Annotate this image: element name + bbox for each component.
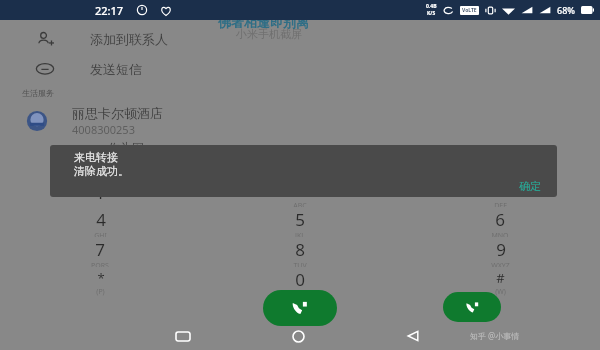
staticText: 添加到联系人 <box>90 31 168 47</box>
button[interactable]: Recents <box>168 328 198 344</box>
button[interactable]: 添加到联系人 <box>0 24 600 54</box>
staticText: DEF <box>494 201 507 207</box>
button[interactable]: 3 <box>400 178 600 207</box>
staticText: 清除成功。 <box>74 164 129 178</box>
button[interactable]: 确定 <box>513 177 547 195</box>
staticText: PQRS <box>91 261 109 267</box>
staticText: GHI <box>94 231 107 237</box>
staticText: 2 <box>295 178 305 201</box>
button[interactable]: 0 <box>200 268 400 297</box>
button[interactable]: Call with SIM 2 <box>443 292 501 322</box>
staticText: 丽思卡尔顿酒店 <box>72 105 163 121</box>
button[interactable]: 6 <box>400 208 600 237</box>
button[interactable]: 8 <box>200 238 400 267</box>
staticText: 9 <box>496 238 506 261</box>
staticText: 小米手机截屏 <box>236 27 302 41</box>
staticText: * <box>97 269 105 287</box>
staticText: (P) <box>96 287 105 297</box>
staticText: 作为网 <box>108 140 144 155</box>
staticText: 0.4B <box>426 3 437 10</box>
staticText: 发送短信 <box>90 61 142 77</box>
button[interactable]: 4 <box>0 208 200 237</box>
staticText: 7 <box>95 238 105 261</box>
staticText: 来电转接 <box>74 150 118 164</box>
button[interactable]: 2 <box>200 178 400 207</box>
staticText: 生活服务 <box>22 88 54 98</box>
staticText: 4008300253 <box>72 122 135 137</box>
staticText: VoLTE <box>462 7 477 14</box>
staticText: 0 <box>295 268 305 291</box>
button[interactable]: 9 <box>400 238 600 267</box>
button[interactable]: 1 <box>0 178 200 207</box>
button[interactable]: Back <box>398 328 428 344</box>
button[interactable]: 丽思卡尔顿酒店 <box>0 104 600 138</box>
staticText: TUV <box>293 261 307 267</box>
staticText: 6 <box>495 208 505 231</box>
button[interactable]: * <box>0 268 200 297</box>
staticText: 8 <box>295 238 305 261</box>
button[interactable]: # <box>400 268 600 297</box>
staticText: WXYZ <box>491 261 510 267</box>
staticText: K/S <box>427 10 436 17</box>
staticText: 1 <box>95 181 105 204</box>
staticText: JKL <box>295 231 305 237</box>
staticText: 5 <box>295 208 305 231</box>
staticText: 4 <box>96 208 106 231</box>
button[interactable]: 5 <box>200 208 400 237</box>
button[interactable]: 7 <box>0 238 200 267</box>
staticText: # <box>496 269 505 287</box>
staticText: 确定 <box>519 179 541 193</box>
staticText: 3 <box>496 178 506 201</box>
staticText: 68% <box>557 4 575 16</box>
staticText: 22:17 <box>95 3 124 18</box>
staticText: 佛者相逢即别离 <box>218 14 309 30</box>
staticText: MNO <box>491 231 509 237</box>
staticText: ABC <box>293 201 307 207</box>
button[interactable]: 发送短信 <box>0 54 600 84</box>
staticText: (W) <box>495 287 506 297</box>
button[interactable]: Call <box>263 290 337 326</box>
button[interactable]: Home <box>283 328 313 344</box>
staticText: 知乎 @小事情 <box>470 330 520 341</box>
